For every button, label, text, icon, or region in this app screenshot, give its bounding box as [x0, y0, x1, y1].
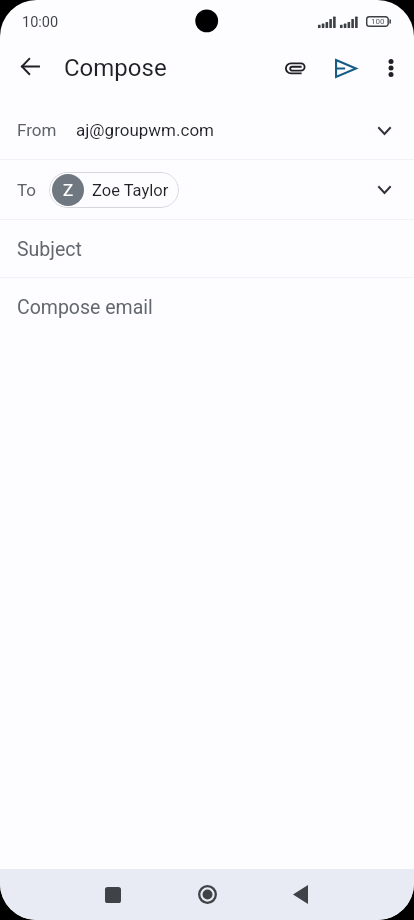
staticText: Compose [64, 54, 167, 82]
button[interactable]: Back [5, 42, 54, 91]
staticText: aj@groupwm.com [76, 120, 215, 140]
button[interactable]: From [0, 94, 414, 160]
staticText: From [17, 120, 57, 140]
button[interactable]: Recent apps [83, 869, 143, 920]
button[interactable]: More options [368, 45, 414, 91]
staticText: To [17, 180, 37, 200]
other: Expand [378, 186, 391, 194]
button[interactable]: Send [320, 44, 368, 92]
button[interactable]: Compose email [0, 278, 414, 336]
staticText: 100 [371, 17, 385, 26]
other: Expand [378, 127, 391, 135]
staticText: Z [63, 180, 74, 200]
button[interactable]: Back [270, 869, 330, 920]
button[interactable]: Subject [0, 220, 414, 278]
staticText: Compose email [17, 296, 153, 319]
button[interactable]: Home [177, 869, 237, 920]
staticText: 10:00 [22, 14, 59, 31]
staticText: Subject [17, 238, 82, 261]
button[interactable]: Z [49, 172, 179, 208]
staticText: Zoe Taylor [92, 181, 169, 200]
button[interactable]: Attach file [272, 44, 320, 92]
